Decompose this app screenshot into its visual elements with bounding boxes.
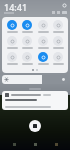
staticText: 14:41 (4, 1, 28, 13)
button[interactable]: Screenshot (36, 36, 50, 49)
button[interactable]: Auto rotate (5, 36, 19, 49)
button[interactable]: Night mode (36, 52, 50, 65)
button[interactable]: Brightness (2, 75, 68, 84)
button[interactable]: Mobile data (20, 20, 34, 33)
button[interactable]: Wi-Fi (5, 20, 19, 33)
button[interactable]: Recents (49, 138, 63, 150)
button[interactable]: Sync (51, 52, 65, 65)
button[interactable]: Settings (62, 3, 67, 8)
button[interactable] (2, 91, 68, 110)
button[interactable]: Power save (5, 52, 19, 65)
button[interactable]: Back (7, 138, 21, 150)
button[interactable]: Bluetooth (20, 36, 34, 49)
button[interactable]: Sound (51, 20, 65, 33)
button[interactable]: GPS (20, 52, 34, 65)
button[interactable]: Record (29, 120, 41, 132)
button[interactable]: Location (51, 36, 65, 49)
button[interactable]: Home (28, 138, 42, 150)
button[interactable]: Flashlight (36, 20, 50, 33)
